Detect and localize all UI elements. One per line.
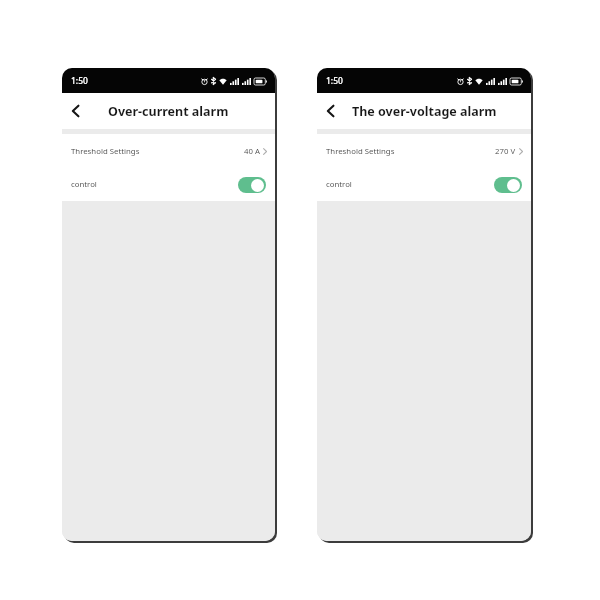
- staticText: The over-voltage alarm: [352, 103, 497, 120]
- button[interactable]: Back: [62, 96, 88, 126]
- button[interactable]: Control toggle, on: [494, 177, 522, 193]
- staticText: 40 A: [244, 146, 260, 157]
- button[interactable]: Threshold Settings: [62, 134, 275, 168]
- staticText: 1:50: [71, 75, 88, 87]
- button[interactable]: Threshold Settings: [317, 134, 531, 168]
- staticText: Over-current alarm: [108, 103, 229, 120]
- staticText: control: [71, 179, 97, 190]
- button[interactable]: Back: [317, 96, 343, 126]
- staticText: 1:50: [326, 75, 343, 87]
- button[interactable]: Control toggle, on: [238, 177, 266, 193]
- staticText: Threshold Settings: [326, 146, 395, 157]
- staticText: control: [326, 179, 352, 190]
- staticText: 270 V: [495, 146, 516, 157]
- staticText: Threshold Settings: [71, 146, 140, 157]
